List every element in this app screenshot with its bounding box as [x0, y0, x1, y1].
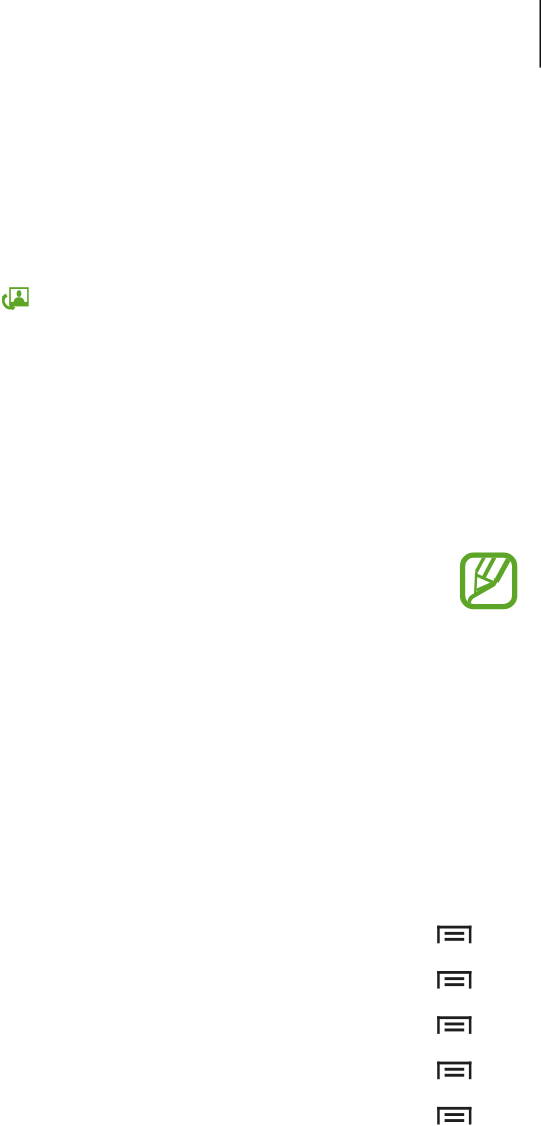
button[interactable]: Contacts [1, 285, 31, 315]
button[interactable]: List item [437, 1016, 471, 1034]
button[interactable]: List item [437, 1061, 471, 1079]
button[interactable]: List item [437, 971, 471, 989]
button[interactable]: List item [437, 1107, 471, 1125]
button[interactable]: List item [437, 925, 471, 943]
button[interactable]: Samsung app [460, 553, 517, 610]
